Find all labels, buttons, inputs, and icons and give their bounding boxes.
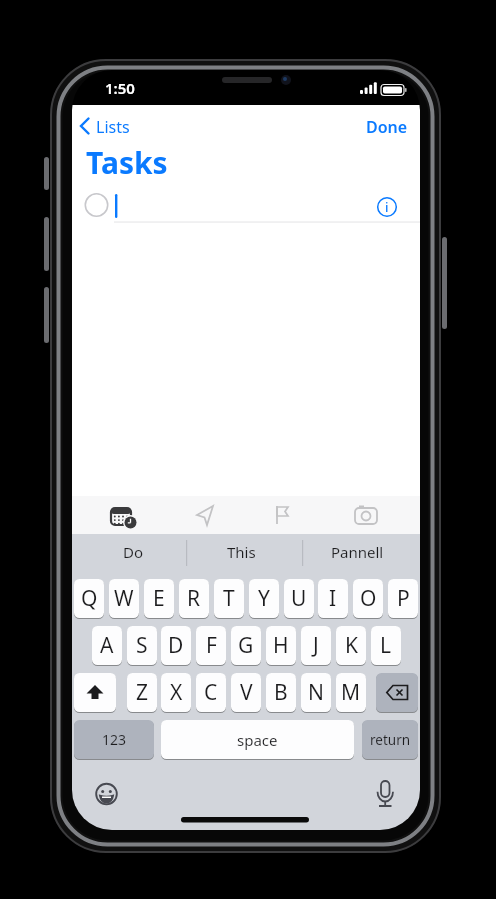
button[interactable]: Done [358, 114, 408, 140]
staticText: This [227, 542, 256, 562]
button[interactable]: J [301, 626, 331, 666]
staticText: Y [258, 584, 270, 613]
staticText: H [273, 631, 289, 660]
staticText: Lists [96, 116, 130, 138]
button[interactable]: T [214, 579, 244, 619]
button[interactable]: C [196, 673, 226, 713]
staticText: return [370, 731, 411, 749]
staticText: i [385, 198, 389, 216]
staticText: B [274, 678, 288, 707]
button[interactable]: L [371, 626, 401, 666]
staticText: S [136, 631, 148, 660]
button[interactable] [376, 673, 418, 713]
button[interactable]: This [188, 538, 294, 566]
staticText: R [187, 584, 201, 613]
staticText: C [204, 678, 218, 707]
button[interactable]: B [266, 673, 296, 713]
staticText: D [168, 631, 184, 660]
button[interactable]: O [353, 579, 383, 619]
button[interactable] [74, 673, 116, 713]
staticText: P [397, 584, 410, 613]
button[interactable]: X [161, 673, 191, 713]
staticText: K [345, 631, 358, 660]
button[interactable]: 123 [74, 720, 154, 760]
staticText: Z [136, 678, 149, 707]
staticText: Do [123, 542, 144, 562]
staticText: F [206, 631, 217, 660]
button[interactable]: S [127, 626, 157, 666]
button[interactable]: Lists [96, 114, 156, 140]
staticText: U [291, 584, 307, 613]
staticText: 1:50 [105, 78, 135, 98]
button[interactable]: space [161, 720, 354, 760]
button[interactable]: Q [74, 579, 104, 619]
button[interactable]: G [231, 626, 261, 666]
staticText: W [114, 584, 134, 613]
staticText: X [170, 678, 183, 707]
button[interactable]: I [318, 579, 348, 619]
staticText: J [313, 631, 319, 660]
staticText: I [329, 584, 337, 613]
staticText: O [360, 584, 377, 613]
staticText: M [341, 678, 361, 707]
button[interactable]: Z [127, 673, 157, 713]
staticText: A [100, 631, 114, 660]
button[interactable]: H [266, 626, 296, 666]
button[interactable]: A [92, 626, 122, 666]
button[interactable]: U [284, 579, 314, 619]
button[interactable]: return [362, 720, 418, 760]
staticText: N [308, 678, 324, 707]
staticText: G [238, 631, 254, 660]
staticText: Tasks [86, 142, 168, 182]
button[interactable]: V [231, 673, 261, 713]
staticText: Done [366, 116, 408, 138]
button[interactable]: Pannell [305, 538, 409, 566]
button[interactable]: Y [249, 579, 279, 619]
button[interactable]: K [336, 626, 366, 666]
button[interactable]: R [179, 579, 209, 619]
button[interactable]: F [196, 626, 226, 666]
button[interactable]: E [144, 579, 174, 619]
button[interactable]: M [336, 673, 366, 713]
staticText: 123 [102, 730, 127, 749]
button[interactable]: i [375, 195, 399, 219]
staticText: Q [81, 584, 98, 613]
staticText: Pannell [331, 542, 384, 562]
button[interactable]: P [388, 579, 418, 619]
button[interactable]: W [109, 579, 139, 619]
button[interactable]: Do [80, 538, 186, 566]
staticText: V [240, 678, 253, 707]
staticText: T [223, 584, 235, 613]
button[interactable]: D [161, 626, 191, 666]
button[interactable]: N [301, 673, 331, 713]
staticText: E [153, 584, 165, 613]
staticText: space [237, 730, 278, 750]
staticText: L [380, 631, 392, 660]
